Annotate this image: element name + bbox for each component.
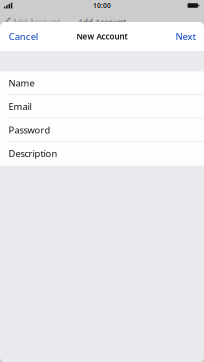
staticText: Name — [9, 77, 35, 89]
staticText: Next — [175, 30, 196, 43]
button[interactable]: Cancel — [0, 23, 45, 49]
button[interactable]: Description — [0, 142, 204, 165]
button[interactable]: Name — [0, 71, 204, 95]
staticText: 10:00 — [93, 1, 111, 10]
staticText: Description — [9, 147, 58, 160]
staticText: New Account — [76, 31, 127, 42]
staticText: Add Account — [12, 17, 60, 28]
button[interactable]: Password — [0, 118, 204, 142]
staticText: Email — [9, 100, 32, 113]
staticText: Add Account — [78, 17, 126, 28]
staticText: Password — [9, 124, 51, 136]
button[interactable]: Email — [0, 95, 204, 118]
button[interactable]: Next — [169, 23, 204, 49]
staticText: Cancel — [9, 30, 39, 43]
